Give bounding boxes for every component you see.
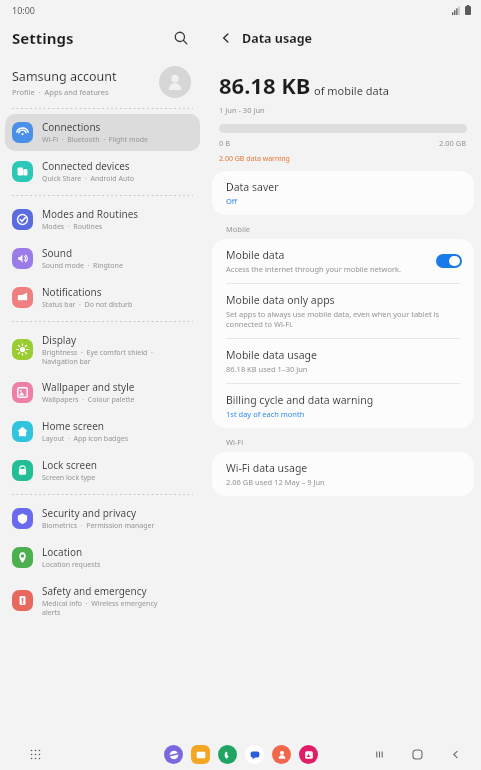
button[interactable]: Mobile data only apps	[212, 284, 474, 338]
staticText: Home screen	[42, 419, 105, 433]
staticText: Connections	[42, 120, 101, 134]
staticText: Data usage	[242, 30, 313, 47]
button[interactable]: internet	[164, 745, 183, 764]
button[interactable]: contacts	[272, 745, 291, 764]
staticText: Mobile data usage	[226, 348, 317, 362]
button[interactable]: Mobile data	[212, 239, 474, 283]
staticText: Lock screen	[42, 458, 98, 472]
button[interactable]: phone	[218, 745, 237, 764]
staticText: 86.18 KB	[219, 70, 311, 100]
staticText: 2.00 GB	[439, 138, 467, 148]
staticText: Wi-Fi data usage	[226, 461, 308, 475]
staticText: Medical info · Wireless emergency alerts	[42, 599, 158, 617]
staticText: 2.06 GB used 12 May – 9 Jun	[226, 477, 325, 487]
button[interactable]: messages	[245, 745, 264, 764]
button[interactable]: Lock screen	[5, 452, 200, 489]
staticText: 1st day of each month	[226, 409, 305, 419]
staticText: 10:00	[12, 4, 36, 16]
button[interactable]: Connected devices	[5, 153, 200, 190]
button[interactable]: Display	[5, 327, 200, 372]
staticText: Screen lock type	[42, 473, 96, 483]
staticText: Data saver	[226, 180, 279, 194]
button[interactable]: Data saver	[212, 171, 474, 215]
staticText: Wallpapers · Colour palette	[42, 395, 135, 405]
staticText: Wi-Fi · Bluetooth · Flight mode	[42, 135, 149, 145]
staticText: Brightness · Eye comfort shield · Naviga…	[42, 348, 153, 366]
button[interactable]: Safety and emergency	[5, 578, 200, 623]
button[interactable]: Mobile data usage	[212, 339, 474, 383]
button[interactable]: Home screen	[5, 413, 200, 450]
staticText: Profile · Apps and features	[12, 87, 109, 97]
staticText: Mobile data only apps	[226, 293, 335, 307]
staticText: Off	[226, 196, 238, 206]
button[interactable]: gallery	[299, 745, 318, 764]
staticText: Quick Share · Android Auto	[42, 174, 135, 184]
staticText: Display	[42, 333, 77, 347]
staticText: Mobile data	[226, 248, 285, 262]
staticText: 86.18 KB used 1–30 Jun	[226, 364, 308, 374]
staticText: Connected devices	[42, 159, 130, 173]
button[interactable]: Wi-Fi data usage	[212, 452, 474, 496]
button[interactable]: Billing cycle and data warning	[212, 384, 474, 428]
staticText: Set apps to always use mobile data, even…	[226, 309, 440, 329]
staticText: 1 Jun - 30 Jun	[219, 105, 265, 115]
staticText: Sound mode · Ringtone	[42, 261, 123, 271]
staticText: Modes and Routines	[42, 207, 139, 221]
staticText: Layout · App icon badges	[42, 434, 129, 444]
button[interactable]: Security and privacy	[5, 500, 200, 537]
button[interactable]: Apps	[24, 743, 46, 765]
staticText: of mobile data	[314, 83, 389, 98]
staticText: Location requests	[42, 560, 101, 570]
staticText: 0 B	[219, 138, 231, 148]
staticText: Wi-Fi	[226, 437, 244, 447]
staticText: Wallpaper and style	[42, 380, 135, 394]
staticText: Safety and emergency	[42, 584, 147, 598]
staticText: 2.00 GB data warning	[219, 154, 290, 164]
button[interactable]: Home	[407, 744, 427, 764]
button[interactable]: Back	[214, 26, 238, 50]
staticText: Settings	[12, 28, 74, 48]
staticText: Mobile	[226, 224, 251, 234]
button[interactable]: Location	[5, 539, 200, 576]
staticText: Sound	[42, 246, 73, 260]
button[interactable]: Back	[445, 744, 465, 764]
staticText: Biometrics · Permission manager	[42, 521, 155, 531]
staticText: Location	[42, 545, 83, 559]
staticText: Access the internet through your mobile …	[226, 264, 402, 274]
staticText: Security and privacy	[42, 506, 137, 520]
button[interactable]: Wallpaper and style	[5, 374, 200, 411]
button[interactable]: Mobile data toggle	[436, 254, 462, 268]
staticText: Modes · Routines	[42, 222, 103, 232]
button[interactable]: Notifications	[5, 279, 200, 316]
button[interactable]: files	[191, 745, 210, 764]
staticText: Notifications	[42, 285, 102, 299]
button[interactable]: Search	[167, 24, 195, 52]
button[interactable]: Samsung account	[0, 56, 205, 108]
staticText: Status bar · Do not disturb	[42, 300, 133, 310]
button[interactable]: Sound	[5, 240, 200, 277]
button[interactable]: Connections	[5, 114, 200, 151]
button[interactable]: Recents	[369, 744, 389, 764]
staticText: Billing cycle and data warning	[226, 393, 374, 407]
staticText: Samsung account	[12, 68, 117, 85]
button[interactable]: Modes and Routines	[5, 201, 200, 238]
